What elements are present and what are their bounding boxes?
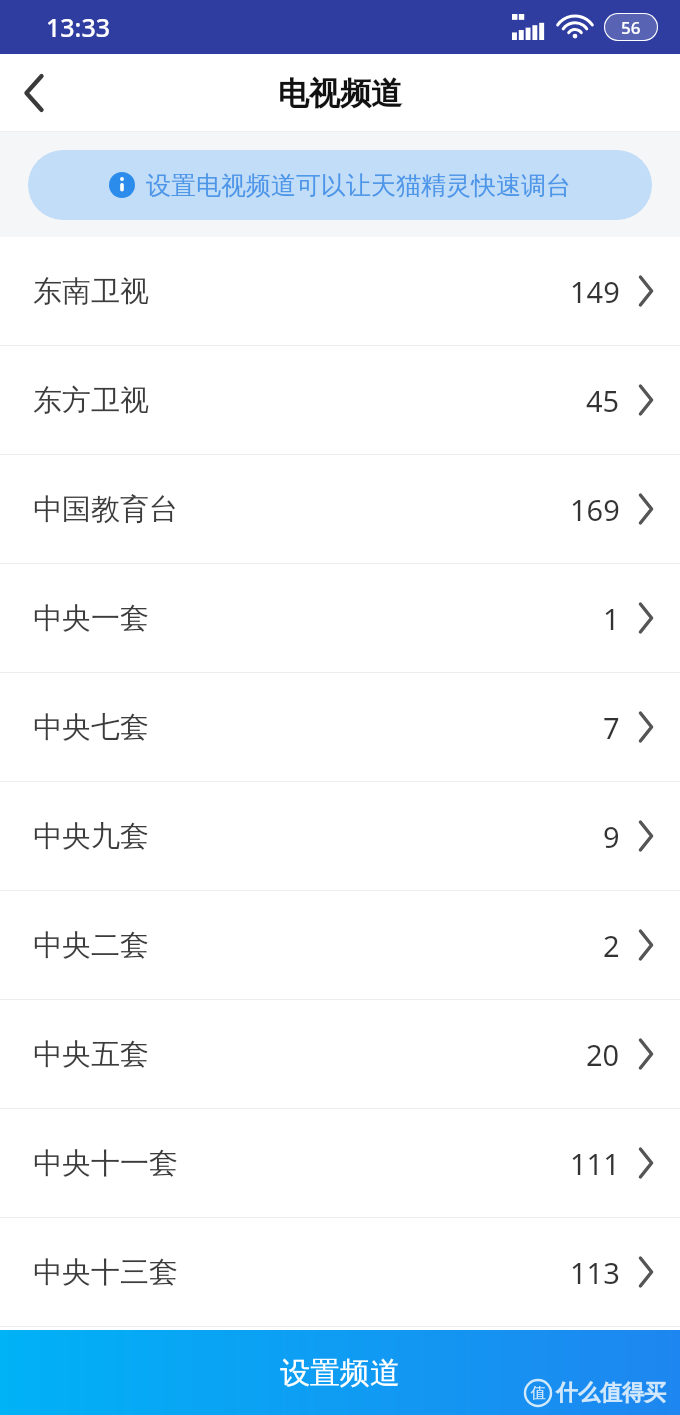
- button[interactable]: 中央十一套: [0, 1109, 680, 1217]
- staticText: 169: [570, 490, 620, 529]
- staticText: 设置电视频道可以让天猫精灵快速调台: [146, 170, 571, 201]
- button[interactable]: 东南卫视: [0, 237, 680, 345]
- button[interactable]: 东方卫视: [0, 346, 680, 454]
- button[interactable]: 中央二套: [0, 891, 680, 999]
- button[interactable]: 中央十三套: [0, 1218, 680, 1326]
- staticText: 东方卫视: [33, 382, 149, 419]
- staticText: 设置频道: [280, 1354, 400, 1392]
- staticText: 1: [603, 599, 620, 638]
- button[interactable]: 中国教育台: [0, 455, 680, 563]
- staticText: 什么值得买: [556, 1379, 666, 1407]
- button[interactable]: Back: [0, 59, 68, 127]
- button[interactable]: 中央九套: [0, 782, 680, 890]
- staticText: 2: [603, 926, 620, 965]
- staticText: 中央十一套: [33, 1145, 178, 1182]
- staticText: 9: [603, 817, 620, 856]
- staticText: 13:33: [46, 10, 111, 44]
- button[interactable]: 设置频道: [0, 1330, 680, 1415]
- staticText: 7: [603, 708, 620, 747]
- staticText: 东南卫视: [33, 273, 149, 310]
- button[interactable]: 中央一套: [0, 564, 680, 672]
- staticText: 113: [570, 1253, 620, 1292]
- staticText: 56: [621, 16, 641, 39]
- staticText: 20: [586, 1035, 620, 1074]
- button[interactable]: 中央五套: [0, 1000, 680, 1108]
- staticText: 中央一套: [33, 600, 149, 637]
- staticText: 值: [531, 1384, 546, 1403]
- button[interactable]: 设置电视频道可以让天猫精灵快速调台: [28, 150, 652, 220]
- staticText: 中国教育台: [33, 491, 178, 528]
- staticText: 中央二套: [33, 927, 149, 964]
- staticText: 149: [570, 272, 620, 311]
- staticText: 45: [586, 381, 620, 420]
- staticText: 111: [570, 1144, 620, 1183]
- staticText: 中央五套: [33, 1036, 149, 1073]
- staticText: 电视频道: [278, 74, 402, 113]
- staticText: 中央七套: [33, 709, 149, 746]
- staticText: 中央九套: [33, 818, 149, 855]
- staticText: 中央十三套: [33, 1254, 178, 1291]
- button[interactable]: 中央七套: [0, 673, 680, 781]
